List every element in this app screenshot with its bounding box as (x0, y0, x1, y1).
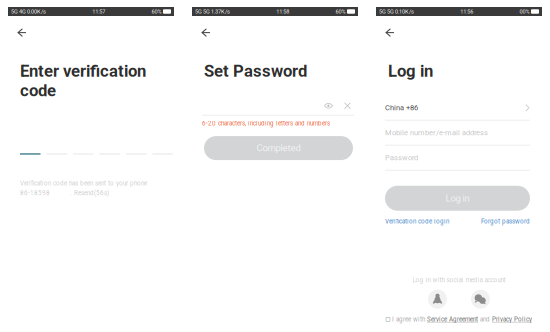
button[interactable]: Privacy Policy (492, 316, 532, 323)
staticText: Privacy Policy (492, 316, 532, 323)
staticText: 5G 5G 0.10K/s (379, 8, 414, 15)
staticText: Enter verification (20, 61, 146, 81)
button[interactable]: Log in with QQ (428, 290, 447, 309)
staticText: Mobile number/e-mail address (385, 128, 488, 137)
staticText: I agree with (392, 316, 425, 323)
button[interactable]: Completed (204, 136, 353, 160)
button[interactable]: Log in (385, 186, 530, 211)
button[interactable]: Log in with WeChat (471, 290, 490, 309)
staticText: 00% (519, 8, 529, 15)
staticText: 5G 5G 1.37K/s (195, 8, 230, 15)
staticText: Forgot password (481, 218, 530, 225)
staticText: China +86 (385, 103, 418, 112)
staticText: Set Password (204, 61, 307, 81)
button[interactable]: Back (381, 24, 399, 41)
staticText: Completed (256, 142, 300, 154)
button[interactable]: Clear password (341, 100, 354, 111)
button[interactable]: Back (13, 24, 31, 41)
staticText: 60% (335, 8, 345, 15)
staticText: Password (385, 153, 418, 162)
staticText: 11:58 (276, 8, 289, 15)
staticText: 60% (151, 8, 161, 15)
button[interactable]: Show password (321, 100, 336, 111)
button[interactable]: Service Agreement (427, 316, 478, 323)
staticText: 86-18598 . Resend(56s) (20, 189, 109, 197)
staticText: 11:57 (92, 8, 105, 15)
button[interactable]: Back (197, 24, 215, 41)
staticText: Service Agreement (427, 316, 478, 323)
staticText: 11:56 (460, 8, 473, 15)
staticText: Log in (445, 193, 469, 204)
staticText: Log in (388, 61, 433, 81)
button[interactable]: Verification code login (385, 218, 449, 225)
staticText: 6-20 characters, including letters and n… (202, 120, 330, 127)
staticText: Verification code has been sent to your … (20, 180, 147, 187)
staticText: 5G 4G 0.00K/s (11, 8, 46, 15)
staticText: Log in with social media account (412, 276, 505, 284)
button[interactable]: Country code China +86 (385, 96, 530, 121)
staticText: code (20, 81, 56, 100)
staticText: Verification code login (385, 218, 449, 225)
button[interactable]: Forgot password (481, 218, 530, 225)
staticText: and (480, 316, 490, 323)
